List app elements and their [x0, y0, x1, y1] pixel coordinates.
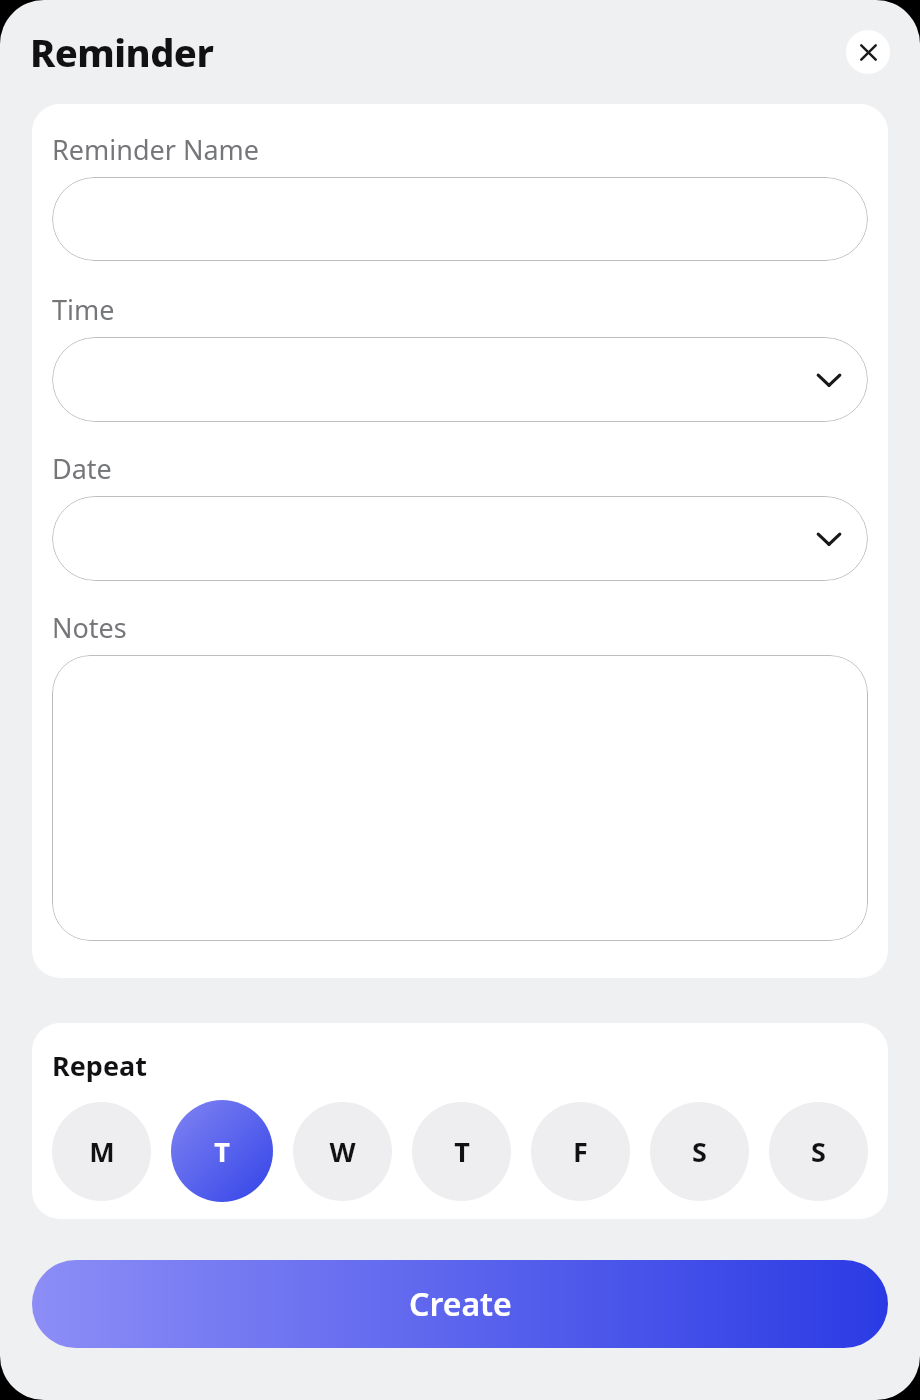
button[interactable]: S	[769, 1102, 868, 1201]
button[interactable]: T	[412, 1102, 511, 1201]
staticText: Notes	[52, 609, 127, 646]
button[interactable]	[52, 655, 868, 941]
staticText: Create	[409, 1282, 512, 1326]
staticText: Reminder Name	[52, 131, 260, 168]
staticText: T	[214, 1133, 230, 1170]
button[interactable]: M	[52, 1102, 151, 1201]
staticText: Repeat	[52, 1047, 147, 1084]
staticText: Time	[52, 291, 115, 328]
button[interactable]: T	[171, 1100, 273, 1202]
staticText: T	[454, 1133, 470, 1170]
button[interactable]: Create	[32, 1260, 888, 1348]
staticText: W	[329, 1133, 356, 1170]
button[interactable]: F	[531, 1102, 630, 1201]
button[interactable]: W	[293, 1102, 392, 1201]
staticText: Reminder	[30, 26, 214, 78]
button[interactable]: Close	[846, 30, 890, 74]
button[interactable]	[52, 177, 868, 261]
staticText: F	[573, 1133, 588, 1170]
button[interactable]	[52, 496, 868, 581]
button[interactable]: S	[650, 1102, 749, 1201]
staticText: S	[811, 1133, 826, 1170]
staticText: S	[692, 1133, 707, 1170]
staticText: M	[89, 1133, 115, 1170]
staticText: Date	[52, 450, 112, 487]
button[interactable]	[52, 337, 868, 422]
